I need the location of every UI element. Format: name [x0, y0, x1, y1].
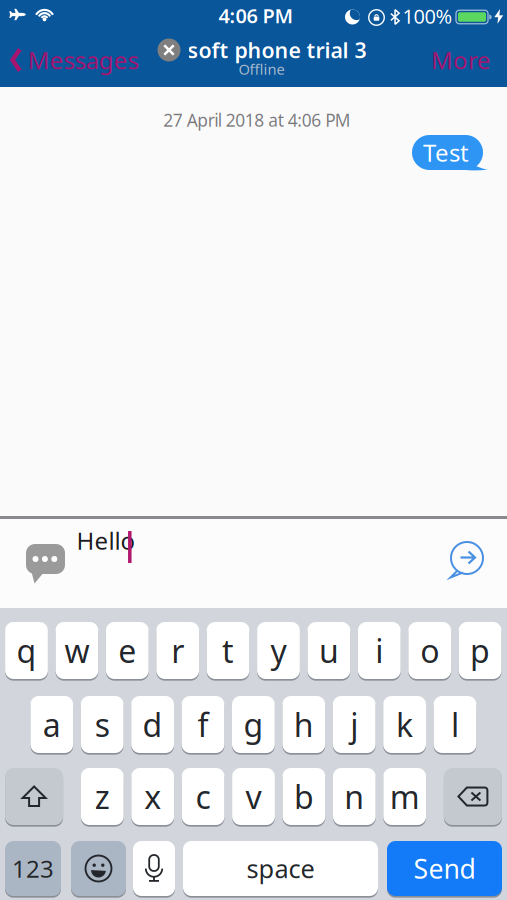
- button[interactable]: v: [232, 767, 275, 826]
- staticText: k: [396, 703, 413, 746]
- button[interactable]: q: [5, 621, 48, 680]
- button[interactable]: n: [333, 767, 376, 826]
- button[interactable]: s: [81, 695, 124, 754]
- staticText: 100%: [402, 3, 452, 29]
- staticText: a: [43, 703, 61, 746]
- staticText: j: [350, 703, 358, 746]
- staticText: Test: [423, 137, 469, 168]
- button[interactable]: t: [207, 621, 249, 680]
- button[interactable]: r: [156, 621, 199, 680]
- button[interactable]: o: [408, 621, 451, 680]
- button[interactable]: Messages: [10, 44, 139, 76]
- staticText: y: [270, 629, 286, 672]
- staticText: x: [144, 775, 161, 818]
- button[interactable]: Shift: [5, 767, 63, 826]
- staticText: c: [196, 775, 211, 818]
- button[interactable]: Message shortcuts: [26, 544, 65, 585]
- button[interactable]: i: [358, 621, 401, 680]
- button[interactable]: g: [232, 695, 275, 754]
- staticText: Hello: [76, 525, 135, 556]
- button[interactable]: w: [55, 621, 98, 680]
- staticText: l: [451, 703, 459, 746]
- button[interactable]: k: [383, 695, 426, 754]
- staticText: i: [375, 629, 383, 672]
- button[interactable]: 123: [5, 840, 61, 897]
- button[interactable]: space: [183, 840, 378, 897]
- staticText: h: [294, 703, 314, 746]
- staticText: e: [118, 629, 136, 672]
- button[interactable]: x: [131, 767, 174, 826]
- button[interactable]: Send: [449, 542, 484, 578]
- button[interactable]: Dictation: [133, 840, 175, 897]
- staticText: 123: [12, 853, 54, 884]
- button[interactable]: f: [182, 695, 224, 754]
- staticText: b: [294, 775, 314, 818]
- button[interactable]: z: [81, 767, 124, 826]
- button[interactable]: j: [333, 695, 376, 754]
- staticText: n: [344, 775, 364, 818]
- staticText: p: [470, 629, 490, 672]
- staticText: m: [390, 775, 420, 818]
- button[interactable]: a: [30, 695, 73, 754]
- staticText: o: [420, 629, 439, 672]
- button[interactable]: m: [383, 767, 426, 826]
- button[interactable]: h: [282, 695, 325, 754]
- staticText: q: [16, 629, 36, 672]
- staticText: More: [431, 44, 491, 76]
- staticText: Send: [413, 851, 475, 886]
- staticText: space: [246, 852, 314, 885]
- button[interactable]: y: [257, 621, 300, 680]
- button[interactable]: More: [431, 44, 491, 76]
- staticText: soft phone trial 3: [187, 36, 366, 64]
- button[interactable]: p: [459, 621, 501, 680]
- staticText: s: [95, 703, 110, 746]
- staticText: r: [171, 629, 184, 672]
- staticText: v: [245, 775, 261, 818]
- staticText: d: [143, 703, 163, 746]
- button[interactable]: u: [307, 621, 350, 680]
- staticText: Messages: [28, 44, 139, 76]
- staticText: t: [222, 629, 234, 672]
- staticText: f: [197, 703, 208, 746]
- staticText: 27 April 2018 at 4:06 PM: [163, 108, 351, 131]
- staticText: 4:06 PM: [218, 2, 293, 29]
- staticText: g: [243, 703, 263, 746]
- button[interactable]: d: [131, 695, 174, 754]
- staticText: Offline: [238, 59, 284, 79]
- button[interactable]: c: [182, 767, 224, 826]
- button[interactable]: e: [106, 621, 149, 680]
- button[interactable]: Emoji: [71, 840, 126, 897]
- button[interactable]: b: [282, 767, 325, 826]
- staticText: w: [64, 629, 89, 672]
- button[interactable]: l: [434, 695, 476, 754]
- button[interactable]: Send: [387, 840, 502, 897]
- staticText: u: [319, 629, 339, 672]
- button[interactable]: Delete: [444, 767, 502, 826]
- staticText: z: [95, 775, 110, 818]
